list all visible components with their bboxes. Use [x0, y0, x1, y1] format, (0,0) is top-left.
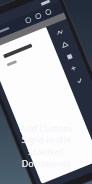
button[interactable]: Phone preview [0, 0, 92, 132]
button[interactable]: Add Custom Signs in the scanned Document… [10, 122, 82, 170]
staticText: Add Custom Signs in the scanned Document… [13, 122, 79, 170]
